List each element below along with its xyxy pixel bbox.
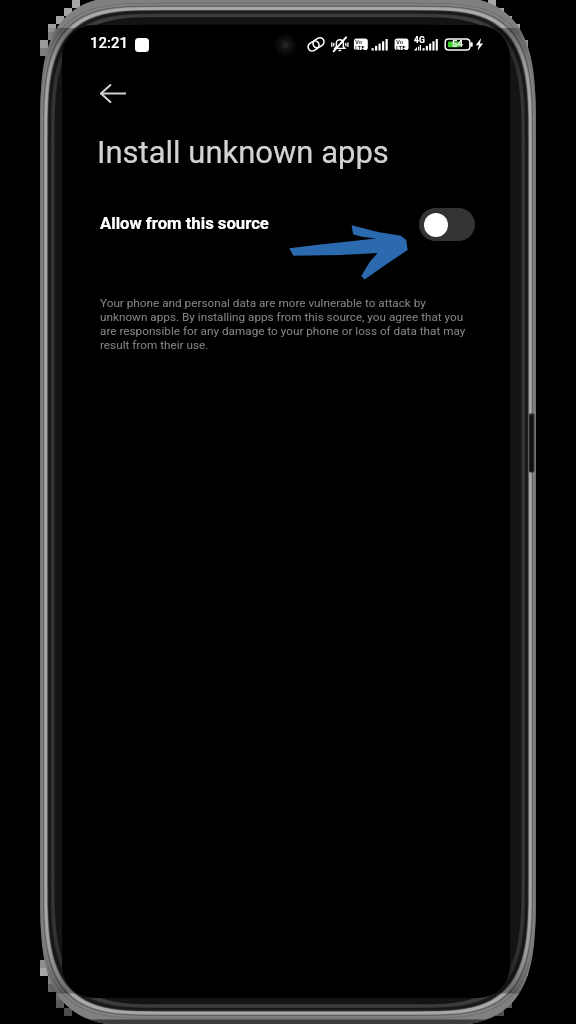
staticText: 54	[452, 38, 463, 49]
staticText: Vo LTE	[355, 38, 365, 51]
staticText: Install unknown apps	[97, 134, 389, 170]
button[interactable]: Allow from this source	[419, 208, 475, 241]
staticText: Your phone and personal data are more vu…	[100, 296, 500, 352]
button[interactable]: Back	[89, 69, 137, 117]
staticText: Vo LTE	[396, 38, 406, 51]
staticText: 12:21	[90, 34, 129, 52]
button[interactable]: Allow from this source	[62, 200, 510, 248]
staticText: 4G	[414, 35, 425, 45]
staticText: Allow from this source	[100, 214, 269, 234]
